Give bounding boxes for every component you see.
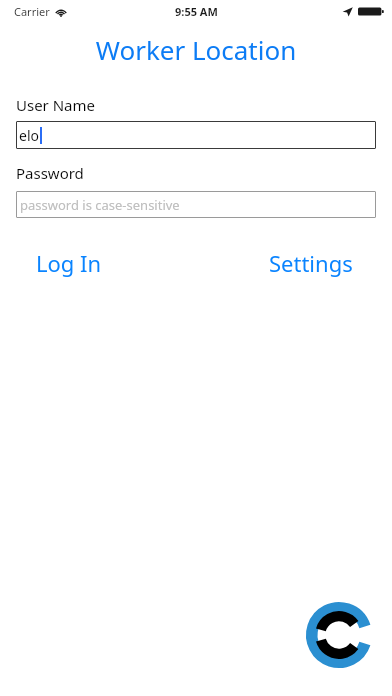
staticText: Settings <box>269 248 353 278</box>
staticText: Worker Location <box>0 32 392 67</box>
button[interactable]: Settings <box>263 244 359 282</box>
staticText: elo <box>19 126 39 145</box>
staticText: 9:55 AM <box>175 4 218 19</box>
staticText: User Name <box>16 95 96 115</box>
button[interactable]: elo <box>16 121 376 149</box>
staticText: Carrier <box>14 4 50 19</box>
staticText: Password <box>16 163 84 183</box>
button[interactable]: Log In <box>30 244 108 282</box>
staticText: Log In <box>36 248 102 278</box>
staticText: password is case-sensitive <box>20 196 180 214</box>
button[interactable]: App logo <box>306 602 372 668</box>
button[interactable]: password is case-sensitive <box>16 191 376 218</box>
